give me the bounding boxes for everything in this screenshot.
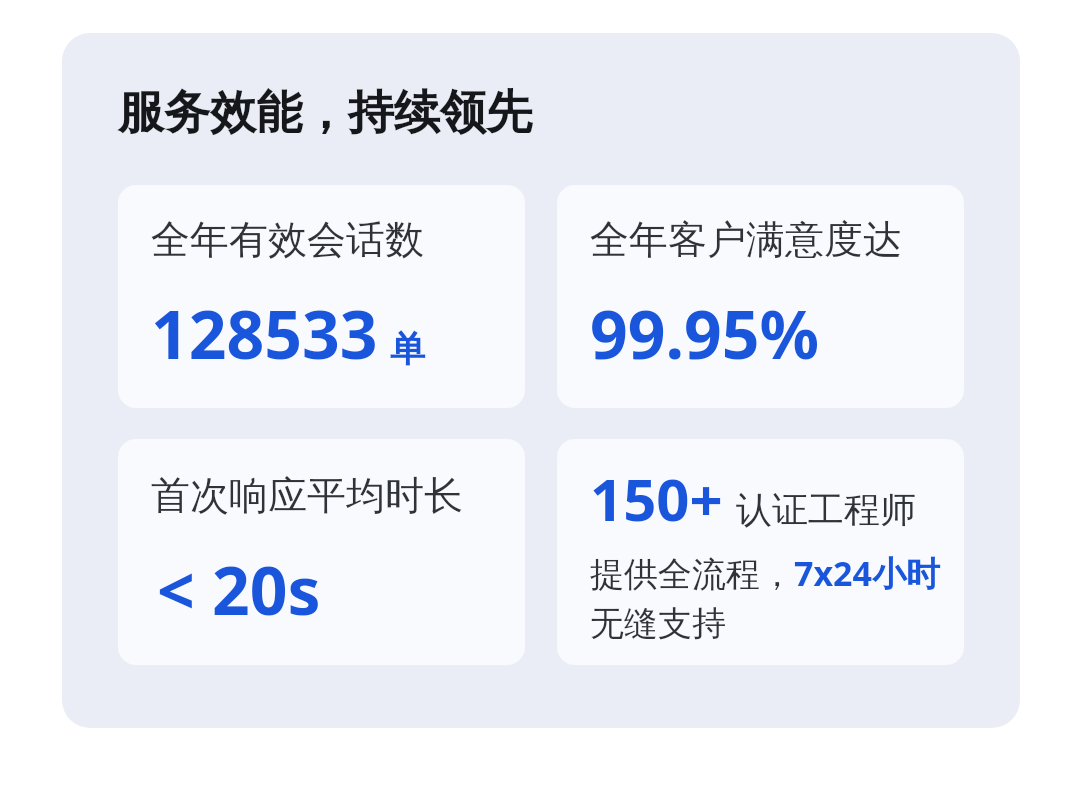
button[interactable]: 全年客户满意度达 bbox=[557, 185, 964, 408]
staticText: 全年有效会话数 bbox=[151, 215, 424, 264]
button[interactable]: 首次响应平均时长 bbox=[118, 439, 525, 665]
staticText: < 20s bbox=[157, 544, 321, 634]
button[interactable]: 150+ bbox=[557, 439, 964, 665]
button[interactable]: 全年有效会话数 bbox=[118, 185, 525, 408]
staticText: 认证工程师 bbox=[736, 487, 916, 532]
staticText: 单 bbox=[390, 327, 425, 371]
staticText: 服务效能，持续领先 bbox=[118, 84, 532, 142]
staticText: 150+ bbox=[590, 459, 723, 538]
staticText: 首次响应平均时长 bbox=[151, 471, 463, 520]
staticText: 99.95% bbox=[590, 288, 820, 378]
staticText: 128533 bbox=[151, 288, 378, 378]
staticText: 提供全流程，7x24小时无缝支持 bbox=[590, 550, 950, 645]
staticText: 全年客户满意度达 bbox=[590, 215, 902, 264]
